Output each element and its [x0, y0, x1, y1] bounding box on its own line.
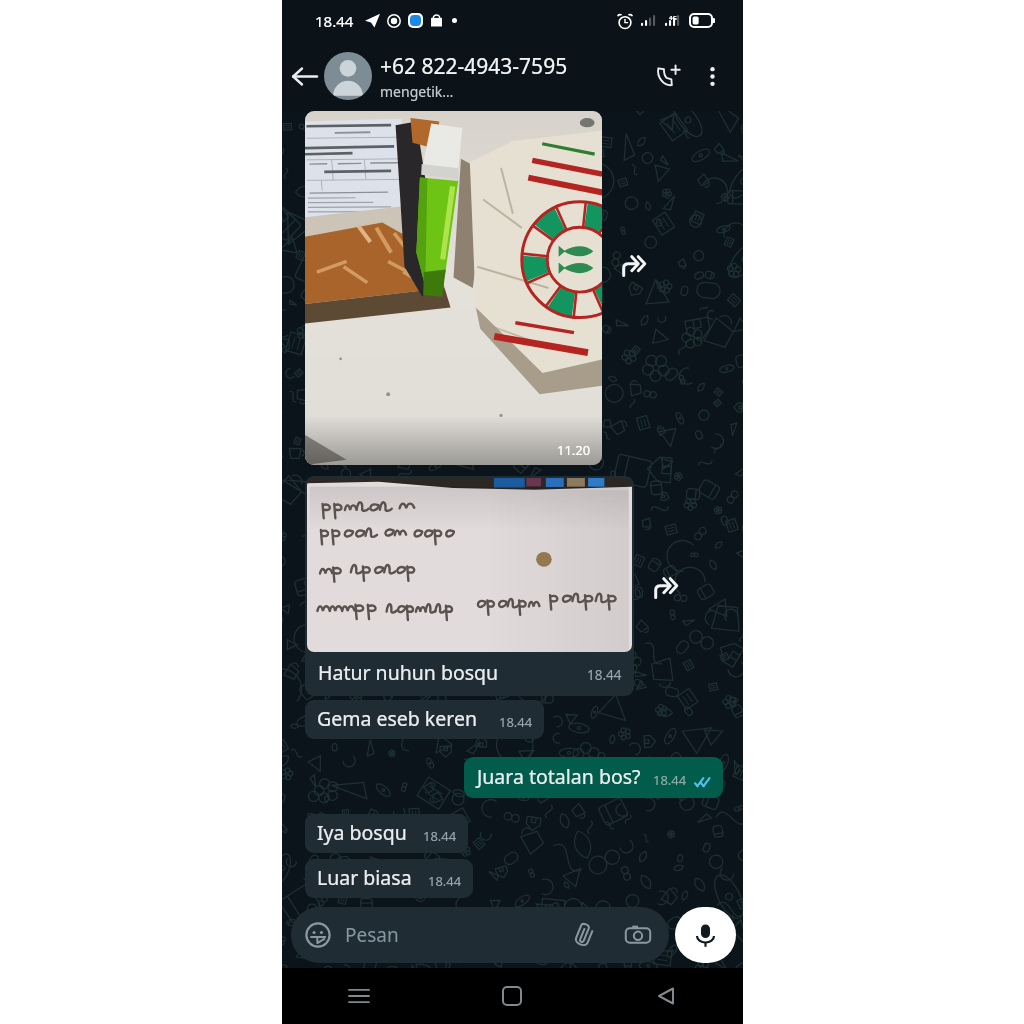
button[interactable]: Hatur nuhun bosqu [305, 476, 634, 696]
other: Attach [572, 923, 596, 947]
button[interactable]: 11.20 [305, 111, 602, 465]
other: Emoji [305, 922, 331, 948]
staticText: 18.44 [499, 713, 533, 731]
staticText: Juara totalan bos? [477, 763, 641, 790]
staticText: Pesan [345, 922, 399, 948]
button[interactable]: Recent apps [282, 968, 435, 1024]
button[interactable]: More options [694, 58, 730, 94]
staticText: mengetik… [380, 82, 454, 101]
staticText: Iya bosqu [317, 819, 407, 846]
button[interactable]: Gema eseb keren [305, 700, 544, 739]
button[interactable]: Add call [648, 56, 688, 96]
button[interactable] [324, 52, 372, 100]
staticText: Gema eseb keren [317, 705, 477, 732]
staticText: 18.44 [315, 11, 354, 31]
button[interactable]: Iya bosqu [305, 814, 468, 853]
staticText: 18.44 [423, 827, 457, 845]
button[interactable]: Home [435, 968, 589, 1024]
button[interactable]: Voice message [675, 907, 736, 963]
button[interactable]: Forward [650, 573, 682, 605]
staticText: 18.44 [587, 666, 622, 684]
button[interactable]: +62 822-4943-7595 [380, 52, 648, 101]
other: Camera [625, 922, 651, 948]
staticText: Hatur nuhun bosqu [318, 659, 499, 686]
button[interactable]: Emoji [291, 907, 669, 963]
staticText: 11.20 [557, 441, 591, 459]
button[interactable]: Back [589, 968, 743, 1024]
button[interactable]: Juara totalan bos? [464, 757, 723, 798]
staticText: 18.44 [653, 771, 687, 789]
staticText: Luar biasa [317, 864, 412, 891]
button[interactable]: Forward [618, 251, 650, 283]
staticText: +62 822-4943-7595 [380, 52, 568, 81]
staticText: 18.44 [428, 872, 462, 890]
button[interactable]: Back [284, 56, 324, 96]
button[interactable]: Luar biasa [305, 859, 473, 898]
staticText: 4G [669, 14, 677, 22]
